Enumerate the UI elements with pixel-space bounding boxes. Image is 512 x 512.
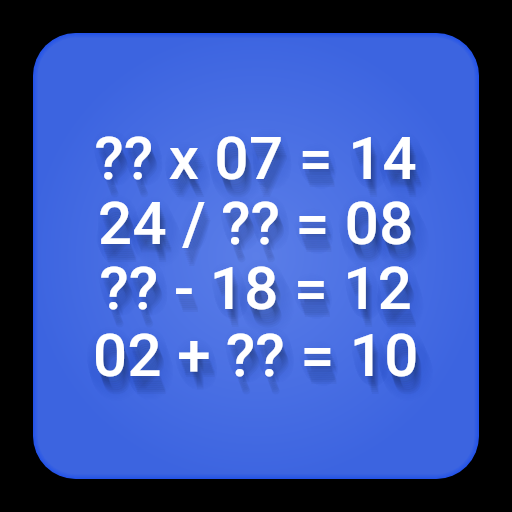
button[interactable]	[33, 33, 479, 479]
